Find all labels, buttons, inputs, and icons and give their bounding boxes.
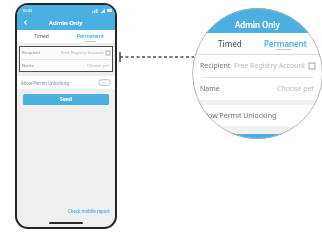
button[interactable]: Send bbox=[192, 134, 322, 139]
staticText: Recipient bbox=[22, 50, 41, 56]
staticText: Permanent bbox=[264, 38, 307, 49]
staticText: Name bbox=[200, 84, 220, 94]
staticText: Check mobile report bbox=[68, 208, 110, 214]
button[interactable]: Allow Permit Unlocking bbox=[192, 105, 322, 126]
staticText: Free Registry Account bbox=[61, 50, 104, 56]
button[interactable]: Permanent bbox=[66, 30, 115, 43]
staticText: Admin Only bbox=[235, 19, 280, 30]
button[interactable]: Check mobile report bbox=[68, 208, 110, 214]
staticText: Allow Permit Unlocking bbox=[21, 80, 69, 86]
button[interactable]: Name bbox=[192, 78, 322, 100]
button[interactable]: Timed bbox=[202, 33, 257, 54]
button[interactable]: Recipient bbox=[19, 46, 113, 59]
button[interactable]: Name bbox=[19, 60, 113, 72]
button[interactable]: Recipient bbox=[192, 55, 322, 77]
button[interactable]: Back bbox=[20, 17, 31, 28]
staticText: Free Registry Account bbox=[234, 61, 306, 71]
button[interactable]: Send bbox=[23, 94, 109, 105]
button[interactable]: Allow Permit Unlocking bbox=[17, 76, 115, 89]
button[interactable]: Permanent bbox=[257, 33, 313, 54]
staticText: Send bbox=[60, 96, 72, 103]
button[interactable]: Timed bbox=[17, 30, 66, 43]
staticText: Permanent bbox=[77, 33, 104, 40]
staticText: Timed bbox=[218, 38, 242, 49]
staticText: Allow Permit Unlocking bbox=[200, 111, 277, 121]
staticText: Name bbox=[22, 63, 34, 69]
staticText: Recipient bbox=[200, 61, 231, 71]
staticText: Admin Only bbox=[49, 19, 83, 27]
staticText: Send bbox=[249, 138, 266, 139]
staticText: Timed bbox=[34, 33, 49, 40]
staticText: Choose pet bbox=[87, 63, 110, 69]
staticText: Choose pet bbox=[277, 84, 315, 94]
staticText: 10:32 bbox=[22, 8, 33, 13]
